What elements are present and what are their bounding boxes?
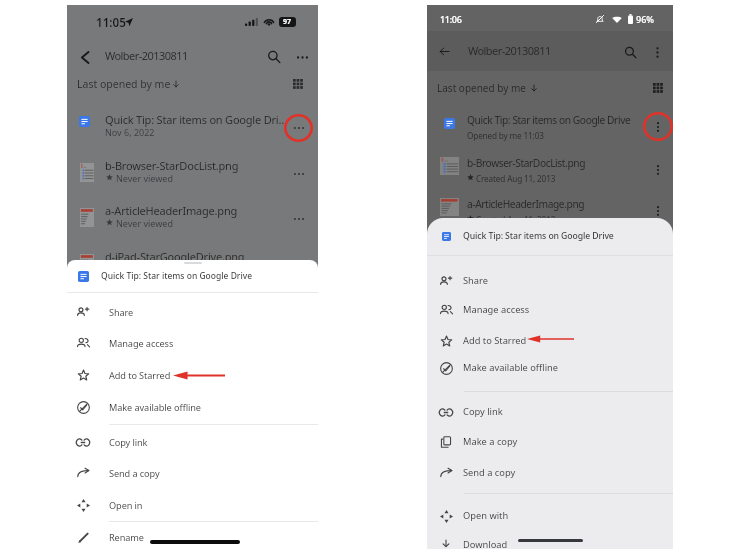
button[interactable]: Share xyxy=(67,297,318,327)
staticText: Open with xyxy=(463,509,509,522)
button[interactable]: Grid view xyxy=(290,76,306,92)
button[interactable]: Add to Starred xyxy=(67,360,318,390)
button[interactable]: Make a copy xyxy=(427,428,673,456)
staticText: Make a copy xyxy=(463,435,518,448)
button[interactable]: More options xyxy=(291,46,313,68)
button[interactable]: Open in xyxy=(67,490,318,520)
button[interactable]: b-Browser-StarDocList.png xyxy=(427,149,673,194)
staticText: Nov 6, 2022 xyxy=(105,126,155,138)
button[interactable]: More options xyxy=(643,196,673,225)
staticText: 11:05 xyxy=(96,14,126,30)
staticText: a-ArticleHeaderImage.png xyxy=(467,197,585,211)
button[interactable]: Share xyxy=(427,267,673,295)
staticText: Created Aug 11, 2013 xyxy=(476,173,556,184)
staticText: Make available offline xyxy=(109,401,201,414)
staticText: Open in xyxy=(109,499,143,512)
button[interactable]: a-ArticleHeaderImage.png xyxy=(427,190,673,235)
staticText: Last opened by me xyxy=(437,81,526,95)
button[interactable]: Send a copy xyxy=(427,459,673,487)
button[interactable]: More options xyxy=(284,160,313,188)
button[interactable]: More options xyxy=(643,112,673,141)
button[interactable]: Rename xyxy=(67,522,318,549)
staticText: Make available offline xyxy=(463,361,559,374)
button[interactable]: a-ArticleHeaderImage.png xyxy=(67,194,318,239)
staticText: Manage access xyxy=(109,337,174,350)
staticText: Share xyxy=(109,306,134,319)
button[interactable]: Grid view xyxy=(650,80,666,96)
staticText: Quick Tip: Star items on Google Drive xyxy=(101,270,253,282)
staticText: Opened by me 11:03 xyxy=(467,130,544,141)
staticText: Add to Starred xyxy=(463,334,527,347)
staticText: Copy link xyxy=(109,436,148,449)
button[interactable]: More options xyxy=(284,205,313,233)
button[interactable]: Copy link xyxy=(427,398,673,426)
button[interactable]: Last opened by me xyxy=(437,81,539,95)
staticText: Manage access xyxy=(463,303,530,316)
staticText: Download xyxy=(463,538,508,549)
staticText: Never viewed xyxy=(116,217,173,229)
button[interactable]: d-iPad-StarGoogleDrive.png xyxy=(67,240,318,285)
staticText: Quick Tip: Star items on Google Drive xyxy=(463,230,614,242)
button[interactable]: Manage access xyxy=(427,296,673,324)
button[interactable]: Search xyxy=(263,46,285,68)
staticText: 97 xyxy=(283,17,292,27)
button[interactable]: Quick Tip: Star items on Google Dri… xyxy=(67,103,318,148)
button[interactable]: Back xyxy=(434,41,454,61)
button[interactable]: More options xyxy=(643,155,673,184)
button[interactable]: b-Browser-StarDocList.png xyxy=(67,149,318,194)
staticText: Created Aug 11, 2013 xyxy=(476,214,556,225)
staticText: b-Browser-StarDocList.png xyxy=(105,158,239,173)
button[interactable]: Open with xyxy=(427,502,673,530)
staticText: 11:06 xyxy=(440,13,462,25)
staticText: Last opened by me xyxy=(77,77,171,91)
staticText: Send a copy xyxy=(109,467,160,480)
staticText: 96% xyxy=(636,13,654,25)
button[interactable]: Copy link xyxy=(67,427,318,457)
staticText: Never viewed xyxy=(116,172,173,184)
staticText: Share xyxy=(463,274,488,287)
staticText: Quick Tip: Star items on Google Drive xyxy=(467,113,631,127)
button[interactable]: Download xyxy=(427,531,673,549)
staticText: Wolber-20130811 xyxy=(468,43,551,58)
button[interactable]: Search xyxy=(618,40,642,64)
button[interactable]: More options xyxy=(645,40,669,64)
button[interactable]: Make available offline xyxy=(67,392,318,422)
staticText: Add to Starred xyxy=(109,369,171,382)
button[interactable]: More options xyxy=(284,114,313,142)
staticText: Rename xyxy=(109,531,144,544)
button[interactable]: Manage access xyxy=(67,328,318,358)
button[interactable]: Back xyxy=(74,46,96,68)
staticText: a-ArticleHeaderImage.png xyxy=(105,203,238,218)
staticText: Send a copy xyxy=(463,466,516,479)
staticText: Quick Tip: Star items on Google Dri… xyxy=(105,112,287,127)
button[interactable]: Make available offline xyxy=(427,354,673,382)
staticText: Copy link xyxy=(463,405,503,418)
button[interactable]: More options xyxy=(284,251,313,279)
staticText: b-Browser-StarDocList.png xyxy=(467,156,586,170)
button[interactable]: Last opened by me xyxy=(77,77,181,91)
button[interactable]: Send a copy xyxy=(67,458,318,488)
button[interactable]: Add to Starred xyxy=(427,327,673,355)
staticText: Wolber-20130811 xyxy=(105,48,188,63)
staticText: d-iPad-StarGoogleDrive.png xyxy=(105,249,245,264)
button[interactable]: Quick Tip: Star items on Google Drive xyxy=(427,106,673,151)
